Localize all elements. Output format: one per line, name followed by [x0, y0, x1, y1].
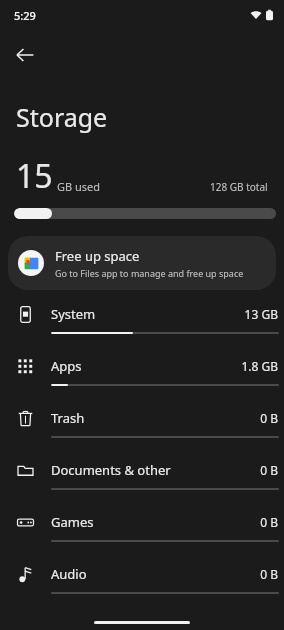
staticText: Free up space — [55, 247, 140, 265]
staticText: Storage — [16, 100, 108, 134]
other: Audio — [0, 566, 51, 583]
other: Documents and other — [0, 462, 51, 479]
other: Apps — [0, 358, 51, 375]
staticText: Games — [51, 513, 94, 531]
staticText: Documents & other — [51, 461, 171, 479]
other: System — [0, 306, 51, 323]
staticText: Go to Files app to manage and free up sp… — [55, 267, 244, 279]
other: Trash — [0, 410, 51, 427]
staticText: 0 B — [260, 410, 278, 426]
button[interactable]: Trash — [0, 400, 284, 452]
staticText: 0 B — [260, 514, 278, 530]
button[interactable]: Free up space — [8, 236, 276, 290]
button[interactable]: Documents and other — [0, 452, 284, 504]
button[interactable]: Apps — [0, 348, 284, 400]
staticText: 13 GB — [244, 306, 278, 322]
staticText: 0 B — [260, 462, 278, 478]
staticText: System — [51, 305, 96, 323]
button[interactable]: Audio — [0, 556, 284, 608]
staticText: 5:29 — [14, 8, 36, 23]
staticText: Audio — [51, 565, 87, 583]
staticText: GB used — [57, 179, 101, 194]
staticText: Trash — [51, 409, 85, 427]
other: Games — [0, 514, 51, 531]
staticText: Apps — [51, 357, 82, 375]
button[interactable]: System — [0, 296, 284, 348]
button[interactable]: Back — [6, 36, 44, 74]
staticText: 0 B — [260, 566, 278, 582]
staticText: 1.8 GB — [241, 358, 278, 374]
staticText: 128 GB total — [210, 180, 268, 194]
staticText: 15 — [16, 154, 53, 198]
button[interactable]: Games — [0, 504, 284, 556]
